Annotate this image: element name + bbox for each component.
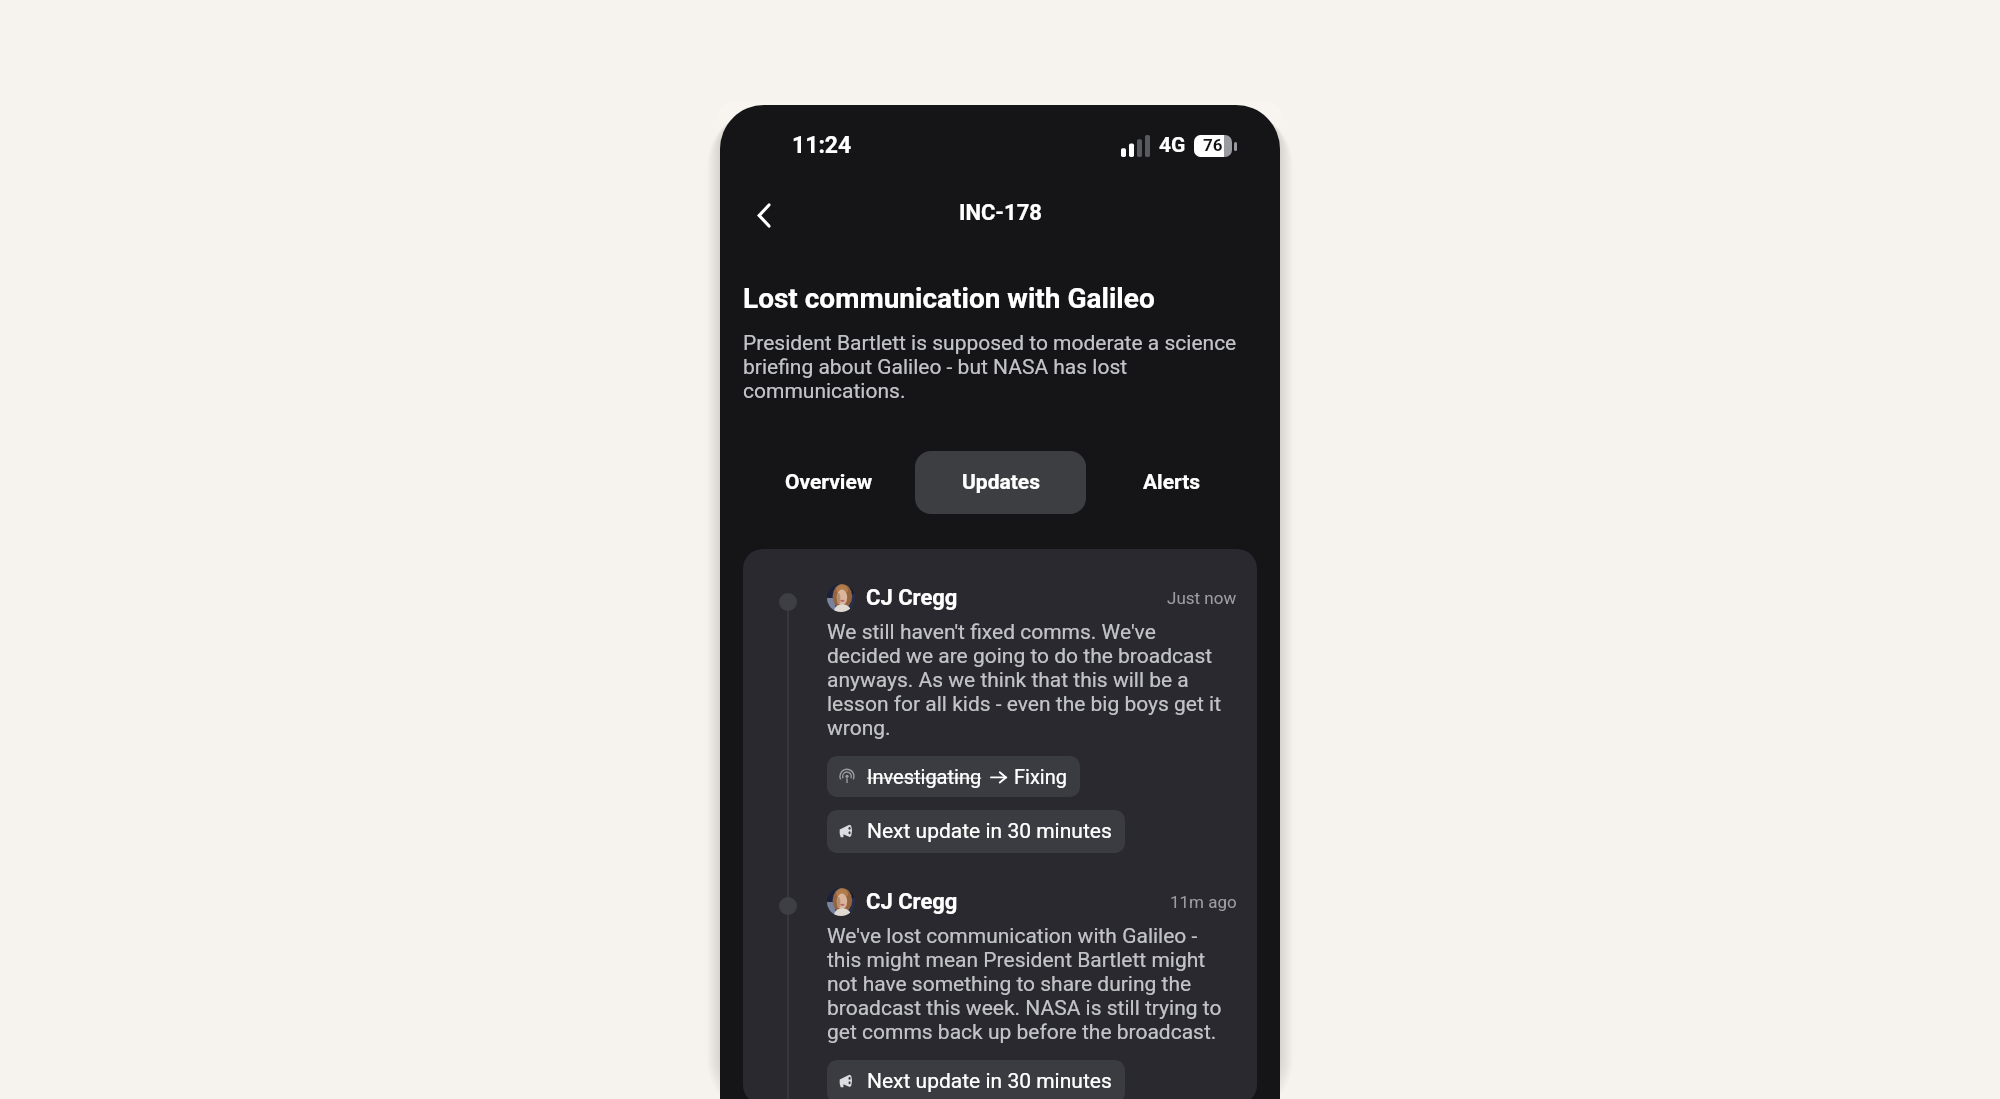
- staticText: 4G: [1159, 133, 1186, 158]
- staticText: CJ Cregg: [866, 889, 958, 915]
- staticText: Updates: [962, 470, 1040, 495]
- staticText: Investigating: [867, 765, 982, 788]
- staticText: We still haven't fixed comms. We've deci…: [827, 620, 1228, 740]
- button[interactable]: Back: [739, 188, 789, 238]
- staticText: Lost communication with Galileo: [743, 282, 1155, 315]
- staticText: CJ Cregg: [866, 585, 958, 611]
- staticText: INC-178: [959, 200, 1042, 226]
- staticText: 76: [1203, 135, 1223, 155]
- staticText: We've lost communication with Galileo - …: [827, 924, 1228, 1044]
- staticText: Fixing: [1014, 765, 1067, 788]
- button[interactable]: Alerts: [1097, 451, 1247, 514]
- staticText: Alerts: [1143, 470, 1201, 495]
- button[interactable]: Next update in 30 minutes: [827, 1060, 1125, 1099]
- staticText: 11m ago: [1170, 892, 1237, 912]
- button[interactable]: Next update in 30 minutes: [827, 810, 1125, 853]
- button[interactable]: Investigating: [827, 756, 1080, 797]
- staticText: Next update in 30 minutes: [867, 819, 1112, 844]
- staticText: Next update in 30 minutes: [867, 1069, 1112, 1094]
- staticText: Just now: [1167, 588, 1237, 608]
- staticText: 11:24: [792, 132, 852, 159]
- button[interactable]: Updates: [915, 451, 1086, 514]
- staticText: President Bartlett is supposed to modera…: [743, 331, 1257, 403]
- button[interactable]: Overview: [754, 451, 904, 514]
- staticText: Overview: [785, 470, 873, 495]
